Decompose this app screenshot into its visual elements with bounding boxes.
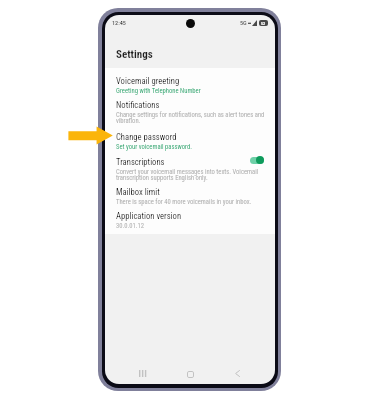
button[interactable]: Change password — [105, 132, 275, 151]
staticText: Set your voicemail password. — [116, 143, 193, 151]
staticText: There is space for 40 more voicemails in… — [116, 198, 252, 206]
staticText: Convert your voicemail messages into tex… — [116, 168, 267, 182]
staticText: Mailbox limit — [116, 187, 160, 197]
staticText: Change settings for notifications, such … — [116, 111, 267, 125]
staticText: Greeting with Telephone Number — [116, 87, 201, 95]
button[interactable]: Home — [187, 371, 194, 378]
staticText: 52 — [261, 21, 266, 26]
staticText: 30.0.01.12 — [116, 222, 145, 230]
staticText: Application version — [116, 211, 182, 221]
staticText: 12:45 — [112, 19, 126, 26]
button[interactable]: Recent apps — [139, 370, 146, 377]
button[interactable]: Mailbox limit — [105, 187, 275, 206]
button[interactable]: Back — [235, 370, 240, 377]
staticText: Notifications — [116, 100, 160, 110]
staticText: Transcriptions — [116, 157, 165, 167]
staticText: Voicemail greeting — [116, 76, 180, 86]
button[interactable]: Transcriptions — [105, 157, 275, 182]
button[interactable]: Notifications — [105, 100, 275, 125]
staticText: Change password — [116, 132, 177, 142]
staticText: 5G — [240, 19, 247, 26]
staticText: Settings — [116, 48, 153, 61]
button[interactable]: Application version — [105, 211, 275, 230]
button[interactable]: Voicemail greeting — [105, 76, 275, 95]
